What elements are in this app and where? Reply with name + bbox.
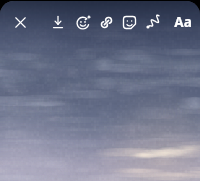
button[interactable]: Close [8,10,32,34]
button[interactable]: Link [94,10,118,34]
button[interactable]: Sticker [117,10,141,34]
staticText: Aa [174,13,192,31]
button[interactable]: Aa [170,11,196,33]
button[interactable]: Effects [71,10,95,34]
button[interactable]: Download [46,10,70,34]
button[interactable]: Draw [141,10,165,34]
